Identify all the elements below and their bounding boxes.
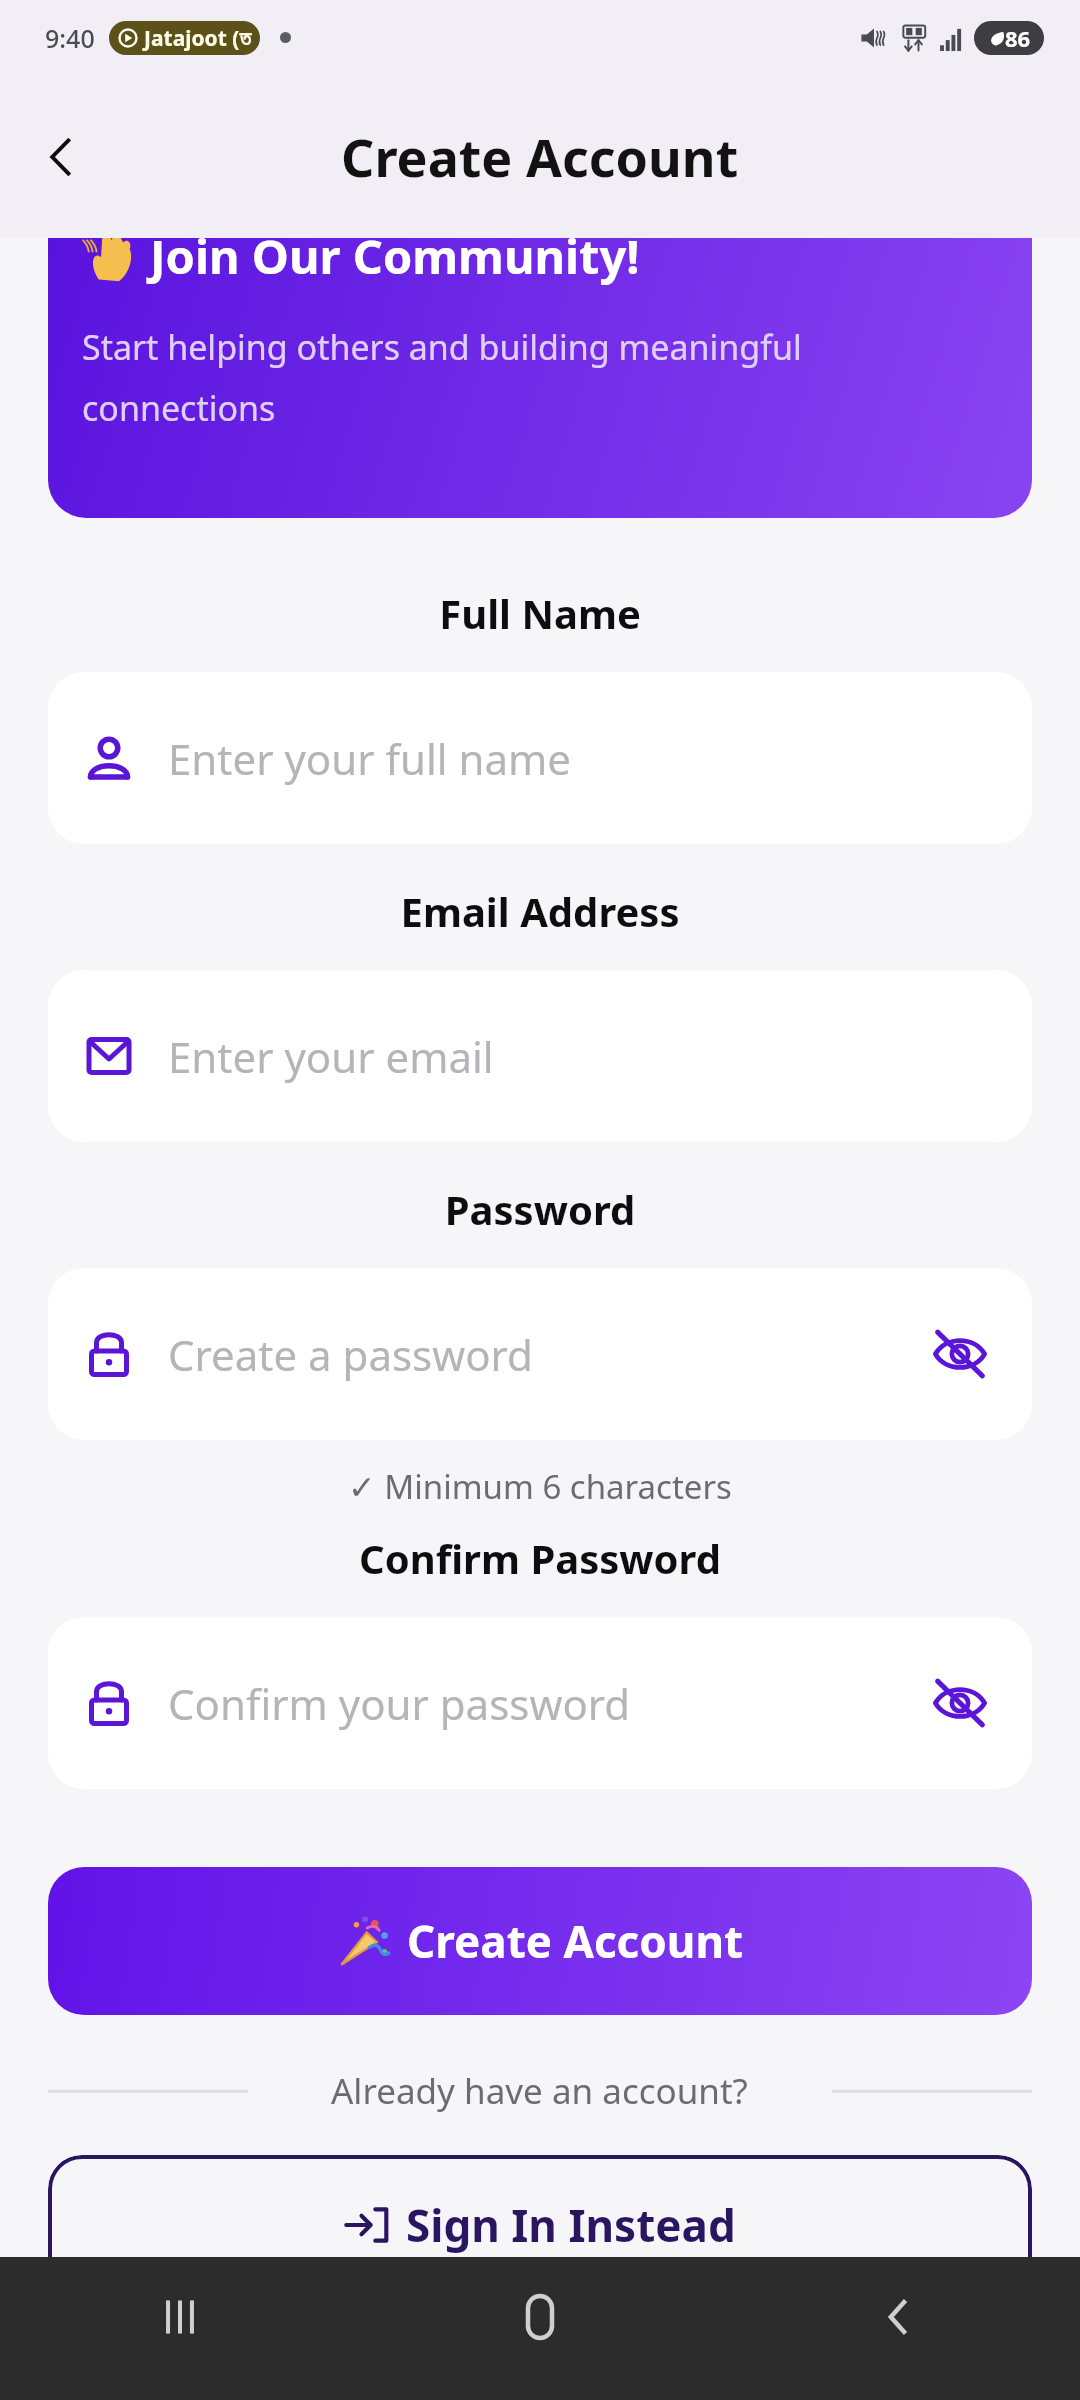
staticText: Create Account bbox=[407, 1911, 744, 1971]
staticText: Already have an account? bbox=[331, 2067, 748, 2115]
staticText: Create a password bbox=[168, 1326, 533, 1383]
button[interactable]: Create Account bbox=[48, 1867, 1032, 2015]
staticText: Enter your email bbox=[168, 1028, 494, 1085]
staticText: ✓ Minimum 6 characters bbox=[0, 1464, 1080, 1509]
button[interactable]: Enter your email bbox=[48, 970, 1032, 1142]
button[interactable]: Confirm your password bbox=[48, 1617, 1032, 1789]
button[interactable]: Sign In Instead bbox=[48, 2155, 1032, 2295]
staticText: Confirm your password bbox=[168, 1675, 631, 1732]
button[interactable]: Recents bbox=[0, 2257, 360, 2377]
staticText: Password bbox=[0, 1182, 1080, 1236]
staticText: Enter your full name bbox=[168, 730, 571, 787]
staticText: Confirm Password bbox=[0, 1531, 1080, 1585]
staticText: Join Our Community! bbox=[150, 238, 640, 288]
button[interactable]: Toggle password visibility bbox=[924, 1667, 996, 1739]
staticText: 9:40 bbox=[45, 21, 95, 55]
button[interactable]: Back bbox=[720, 2257, 1080, 2377]
button[interactable]: Home bbox=[360, 2257, 720, 2377]
button[interactable]: Back bbox=[22, 118, 100, 196]
staticText: Full Name bbox=[0, 586, 1080, 640]
button[interactable]: Enter your full name bbox=[48, 672, 1032, 844]
staticText: Jatajoot (ত bbox=[144, 24, 251, 53]
button[interactable]: Create a password bbox=[48, 1268, 1032, 1440]
staticText: Email Address bbox=[0, 884, 1080, 938]
staticText: 86 bbox=[1005, 23, 1031, 53]
button[interactable]: Toggle password visibility bbox=[924, 1318, 996, 1390]
staticText: Start helping others and building meanin… bbox=[82, 324, 1002, 431]
staticText: Create Account bbox=[341, 121, 739, 192]
staticText: Sign In Instead bbox=[406, 2195, 736, 2255]
button[interactable]: Join Our Community! bbox=[48, 238, 1032, 518]
